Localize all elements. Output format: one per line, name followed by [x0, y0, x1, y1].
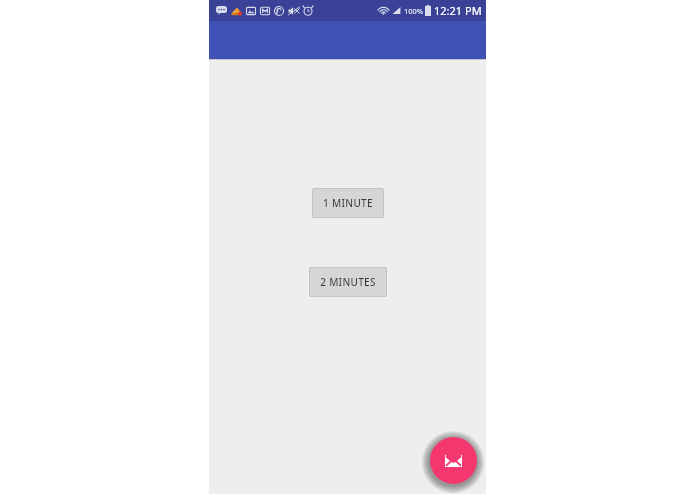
button[interactable]: 2 MINUTES [309, 267, 387, 297]
staticText: 2 MINUTES [320, 275, 376, 289]
button[interactable]: 1 MINUTE [312, 188, 384, 218]
staticText: 100% [404, 6, 424, 16]
staticText: 1 MINUTE [323, 196, 373, 210]
staticText: 12:21 PM [434, 3, 482, 18]
button[interactable]: Compose email [430, 437, 477, 484]
